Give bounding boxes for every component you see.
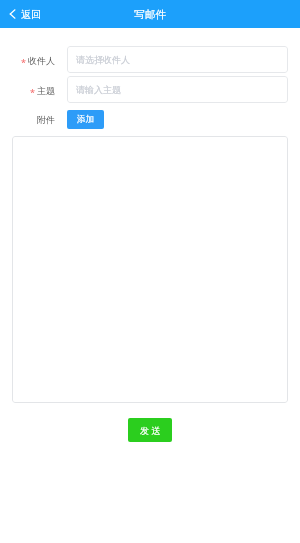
button[interactable]: 发 送 [128, 418, 172, 442]
staticText: 主题 [37, 85, 55, 96]
button[interactable] [12, 136, 288, 403]
button[interactable]: 添加 [67, 110, 104, 129]
button[interactable]: 请输入主题 [67, 76, 288, 103]
staticText: 请选择收件人 [76, 54, 130, 65]
staticText: * [30, 86, 35, 98]
button[interactable]: 请选择收件人 [67, 46, 288, 73]
staticText: 发 送 [140, 424, 161, 436]
staticText: 收件人 [28, 55, 55, 66]
staticText: 请输入主题 [76, 84, 121, 95]
other: Back [9, 9, 16, 19]
staticText: 返回 [21, 8, 41, 21]
button[interactable]: Back [0, 0, 51, 28]
staticText: 附件 [37, 114, 55, 125]
staticText: 添加 [77, 114, 94, 125]
staticText: 写邮件 [134, 8, 166, 21]
staticText: * [21, 56, 26, 68]
